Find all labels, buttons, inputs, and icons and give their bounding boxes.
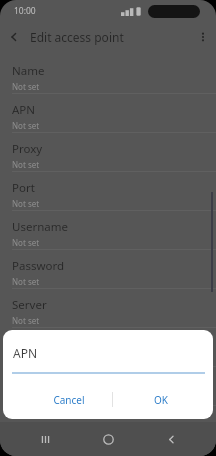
staticText: Not set <box>12 81 40 92</box>
button[interactable]: Recents <box>27 422 63 456</box>
staticText: Server <box>12 297 47 313</box>
staticText: Not set <box>12 198 40 209</box>
staticText: Name <box>12 63 45 79</box>
staticText: APN <box>13 345 38 361</box>
staticText: Proxy <box>12 141 43 157</box>
staticText: Password <box>12 258 65 274</box>
button[interactable]: Proxy <box>0 133 216 172</box>
button[interactable]: MMS port <box>0 367 216 406</box>
button[interactable]: Cancel <box>39 390 99 410</box>
button[interactable]: Server <box>0 289 216 328</box>
staticText: Port <box>12 180 35 196</box>
staticText: Username <box>12 219 68 235</box>
button[interactable]: More options <box>190 24 216 50</box>
staticText: MMS proxy <box>12 336 73 352</box>
button[interactable]: Port <box>0 172 216 211</box>
button[interactable]: Name <box>0 55 216 94</box>
staticText: 10:00 <box>14 5 36 17</box>
staticText: OK <box>154 393 168 407</box>
staticText: Not set <box>12 315 40 326</box>
staticText: Not set <box>12 120 40 131</box>
button[interactable]: MMS proxy <box>0 328 216 367</box>
button[interactable]: Home <box>90 422 126 456</box>
button[interactable]: Username <box>0 211 216 250</box>
button[interactable]: APN <box>0 94 216 133</box>
staticText: Not set <box>12 276 40 287</box>
button[interactable]: Back <box>0 23 28 51</box>
button[interactable]: Back <box>153 422 189 456</box>
staticText: Not set <box>12 237 40 248</box>
button[interactable]: Password <box>0 250 216 289</box>
staticText: Not set <box>12 159 40 170</box>
staticText: Edit access point <box>30 29 124 45</box>
button[interactable]: OK <box>131 390 191 410</box>
staticText: APN <box>12 102 36 118</box>
staticText: Not set <box>12 354 40 365</box>
staticText: Cancel <box>53 393 85 407</box>
